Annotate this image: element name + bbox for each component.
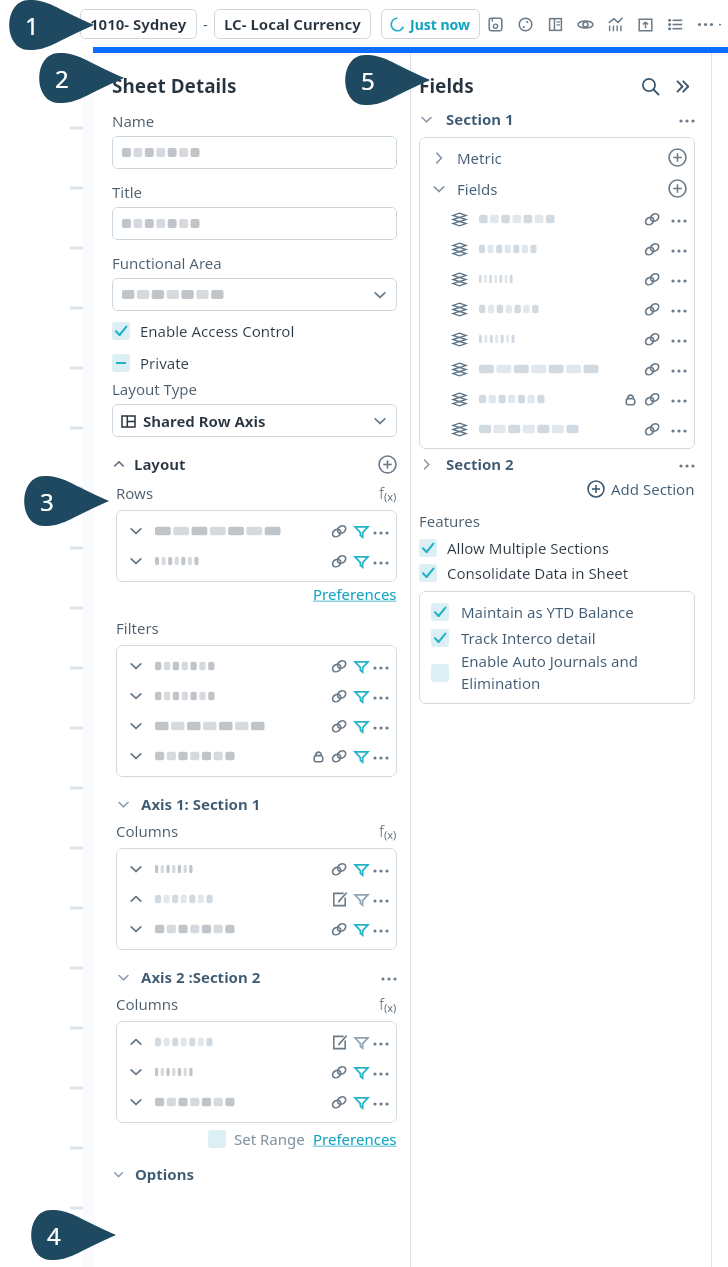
other: Filter: [352, 860, 371, 879]
button[interactable]: [112, 278, 397, 311]
staticText: Rows: [116, 483, 154, 503]
staticText: Section 1: [446, 109, 514, 129]
button[interactable]: Set Range: [208, 1130, 226, 1148]
button[interactable]: Metric: [419, 142, 695, 173]
button[interactable]: Link: [419, 294, 695, 324]
other: More options: [373, 553, 389, 569]
button[interactable]: Options: [112, 1161, 397, 1187]
other: Link: [643, 210, 662, 229]
button[interactable]: Link: [116, 516, 397, 546]
button[interactable]: Chart: [600, 9, 630, 39]
button[interactable]: Link: [116, 711, 397, 741]
other: More options: [373, 688, 389, 704]
button[interactable]: Layout: [112, 451, 397, 477]
other: Add layout: [378, 455, 397, 474]
button[interactable]: Export: [630, 9, 660, 39]
button[interactable]: Allow Multiple Sections: [419, 535, 695, 560]
other: Filter: [352, 1093, 371, 1112]
button[interactable]: Link: [116, 651, 397, 681]
staticText: Metric: [457, 148, 502, 168]
button[interactable]: Fields: [419, 173, 695, 204]
staticText: Title: [112, 182, 142, 202]
other: More options: [373, 748, 389, 764]
button[interactable]: Section 2: [419, 449, 695, 479]
other: Link: [643, 300, 662, 319]
button[interactable]: Section 1: [419, 105, 695, 133]
staticText: Enable Access Control: [140, 321, 295, 341]
other: Link: [643, 330, 662, 349]
button[interactable]: Save: [480, 9, 510, 39]
other: More options: [373, 921, 389, 937]
button[interactable]: Locked: [116, 741, 397, 771]
button[interactable]: More: [690, 9, 720, 39]
button[interactable]: Link: [116, 914, 397, 944]
button[interactable]: LC- Local Currency: [214, 9, 371, 39]
staticText: 2: [55, 62, 69, 95]
button[interactable]: Edit: [116, 884, 397, 914]
button[interactable]: Search: [637, 73, 663, 99]
button[interactable]: Link: [419, 354, 695, 384]
other: Filter: [352, 920, 371, 939]
other: More options: [373, 1064, 389, 1080]
staticText: Axis 1: Section 1: [141, 794, 261, 814]
button[interactable]: Add section: [419, 479, 695, 499]
staticText: 1010- Sydney: [90, 14, 187, 34]
button[interactable]: Link: [116, 854, 397, 884]
button[interactable]: Link: [116, 1087, 397, 1117]
other: More options: [671, 301, 687, 317]
other: More options: [671, 391, 687, 407]
other: Add metric: [668, 148, 687, 167]
button[interactable]: Axis 2 :Section 2: [116, 964, 397, 990]
button[interactable]: Link: [419, 234, 695, 264]
button[interactable]: Shared Row Axis: [112, 404, 397, 437]
other: More options: [373, 1034, 389, 1050]
other: Link: [643, 360, 662, 379]
other: More options: [373, 658, 389, 674]
button[interactable]: Link: [419, 204, 695, 234]
other: More options: [373, 891, 389, 907]
button[interactable]: Link: [419, 324, 695, 354]
button[interactable]: Preview: [570, 9, 600, 39]
other: Link: [330, 687, 349, 706]
staticText: (x): [384, 827, 397, 842]
button[interactable]: f: [379, 993, 397, 1015]
button[interactable]: [112, 207, 397, 240]
button[interactable]: Track Interco detail: [431, 625, 685, 651]
button[interactable]: Preferences: [313, 582, 397, 604]
other: More options: [679, 111, 695, 127]
button[interactable]: Private: [112, 350, 397, 376]
button[interactable]: Enable Auto Journals and Elimination: [431, 651, 685, 694]
button[interactable]: Axis 1: Section 1: [116, 791, 397, 817]
button[interactable]: f: [379, 482, 397, 504]
button[interactable]: Layout: [540, 9, 570, 39]
staticText: Options: [135, 1164, 194, 1184]
staticText: Allow Multiple Sections: [447, 538, 609, 558]
button[interactable]: Maintain as YTD Balance: [431, 599, 685, 625]
other: Filter: [352, 890, 371, 909]
button[interactable]: Expand panel: [669, 73, 695, 99]
button[interactable]: Preferences: [313, 1129, 397, 1149]
other: More options: [671, 211, 687, 227]
button[interactable]: Locked: [419, 384, 695, 414]
other: More options: [671, 331, 687, 347]
button[interactable]: Link: [116, 546, 397, 576]
button[interactable]: Link: [419, 264, 695, 294]
button[interactable]: Link: [116, 1057, 397, 1087]
staticText: Functional Area: [112, 253, 222, 273]
other: More options: [373, 1094, 389, 1110]
button[interactable]: List: [660, 9, 690, 39]
button[interactable]: Edit: [116, 1027, 397, 1057]
other: Link: [330, 717, 349, 736]
button[interactable]: Just now: [381, 9, 480, 39]
button[interactable]: [112, 136, 397, 169]
button[interactable]: 1010- Sydney: [80, 9, 197, 39]
staticText: Section 2: [446, 454, 514, 474]
button[interactable]: Theme: [510, 9, 540, 39]
staticText: Preferences: [313, 584, 397, 604]
button[interactable]: Consolidate Data in Sheet: [419, 560, 695, 585]
other: More options: [671, 271, 687, 287]
button[interactable]: Link: [419, 414, 695, 444]
button[interactable]: Link: [116, 681, 397, 711]
button[interactable]: f: [379, 820, 397, 842]
button[interactable]: Enable Access Control: [112, 318, 397, 344]
